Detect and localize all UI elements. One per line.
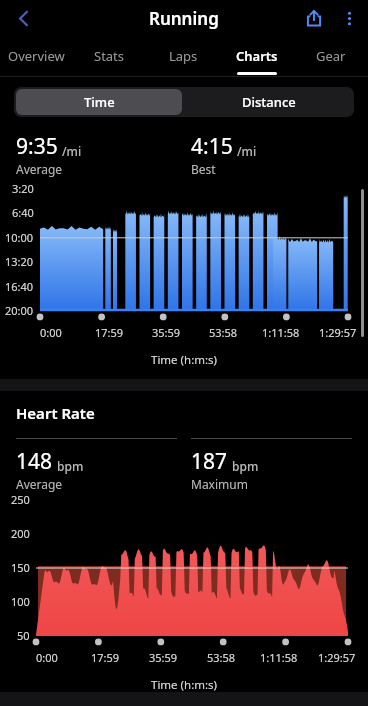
- staticText: 13:20: [5, 254, 34, 269]
- staticText: 4:15: [191, 132, 233, 161]
- staticText: Best: [191, 161, 216, 177]
- staticText: 1:29:57: [319, 325, 357, 340]
- staticText: 17:59: [95, 325, 124, 340]
- staticText: Heart Rate: [16, 403, 95, 423]
- staticText: Laps: [169, 47, 198, 65]
- staticText: bpm: [232, 458, 259, 474]
- staticText: Overview: [8, 47, 65, 65]
- staticText: 53:58: [209, 325, 238, 340]
- staticText: /mi: [62, 143, 82, 159]
- staticText: 0:00: [36, 650, 58, 665]
- staticText: 35:59: [149, 650, 178, 665]
- staticText: bpm: [57, 458, 84, 474]
- staticText: Time (h:m:s): [151, 352, 218, 368]
- staticText: 187: [191, 447, 228, 476]
- button[interactable]: Share: [296, 0, 332, 36]
- button[interactable]: Charts: [220, 36, 294, 76]
- staticText: 100: [11, 594, 30, 609]
- button[interactable]: Time: [16, 89, 182, 115]
- staticText: 200: [11, 526, 30, 541]
- staticText: 1:11:58: [262, 325, 300, 340]
- staticText: Distance: [242, 93, 296, 111]
- staticText: Average: [16, 161, 63, 177]
- staticText: 17:59: [91, 650, 120, 665]
- staticText: 1:29:57: [318, 650, 356, 665]
- staticText: Stats: [94, 47, 125, 65]
- button[interactable]: Distance: [184, 87, 354, 117]
- staticText: 9:35: [16, 132, 58, 161]
- staticText: Running: [149, 7, 219, 30]
- staticText: 35:59: [152, 325, 181, 340]
- button[interactable]: Back: [6, 1, 40, 35]
- staticText: Maximum: [191, 476, 248, 492]
- staticText: Average: [16, 476, 63, 492]
- button[interactable]: Gear: [294, 36, 368, 76]
- staticText: 6:40: [12, 205, 34, 220]
- staticText: 20:00: [5, 303, 34, 318]
- staticText: Gear: [316, 47, 346, 65]
- staticText: 10:00: [5, 230, 34, 245]
- button[interactable]: Stats: [73, 36, 146, 76]
- staticText: Charts: [236, 47, 278, 65]
- staticText: 0:00: [40, 325, 62, 340]
- button[interactable]: Overview: [0, 36, 73, 76]
- staticText: /mi: [237, 143, 257, 159]
- staticText: Time (h:m:s): [151, 677, 218, 692]
- staticText: 148: [16, 447, 53, 476]
- staticText: 16:40: [5, 279, 34, 294]
- staticText: 250: [11, 492, 30, 507]
- staticText: 53:58: [207, 650, 236, 665]
- staticText: 1:11:58: [260, 650, 298, 665]
- staticText: 3:20: [12, 181, 34, 196]
- button[interactable]: Laps: [146, 36, 220, 76]
- staticText: 150: [11, 560, 30, 575]
- button[interactable]: More options: [332, 1, 366, 35]
- staticText: 50: [17, 628, 30, 643]
- staticText: Time: [84, 93, 115, 111]
